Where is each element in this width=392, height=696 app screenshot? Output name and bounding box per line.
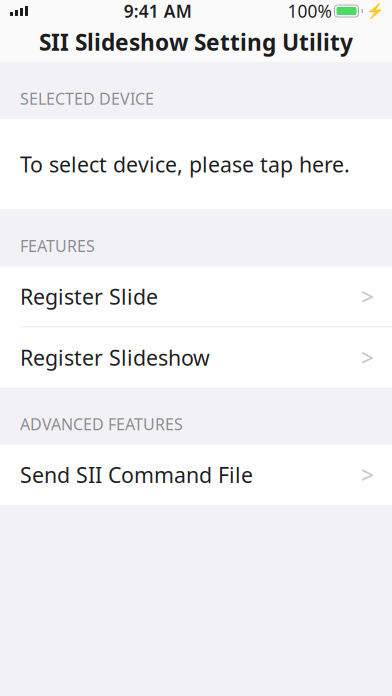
button[interactable]: Send SII Command File — [0, 445, 392, 505]
staticText: ⚡ — [366, 3, 384, 19]
button[interactable]: Register Slideshow — [0, 327, 392, 387]
button[interactable]: To select device, please tap here. — [0, 119, 392, 209]
staticText: SII Slideshow Setting Utility — [39, 27, 353, 57]
button[interactable]: Register Slide — [0, 266, 392, 326]
staticText: > — [361, 281, 374, 311]
staticText: SELECTED DEVICE — [20, 88, 154, 109]
staticText: To select device, please tap here. — [20, 150, 350, 178]
staticText: 100% — [287, 0, 331, 22]
staticText: FEATURES — [20, 235, 95, 256]
staticText: > — [361, 342, 374, 372]
staticText: Send SII Command File — [20, 461, 253, 489]
staticText: Register Slideshow — [20, 343, 210, 372]
staticText: Register Slide — [20, 282, 158, 311]
staticText: 9:41 AM — [124, 0, 192, 22]
staticText: > — [361, 460, 374, 490]
staticText: ADVANCED FEATURES — [20, 413, 183, 435]
